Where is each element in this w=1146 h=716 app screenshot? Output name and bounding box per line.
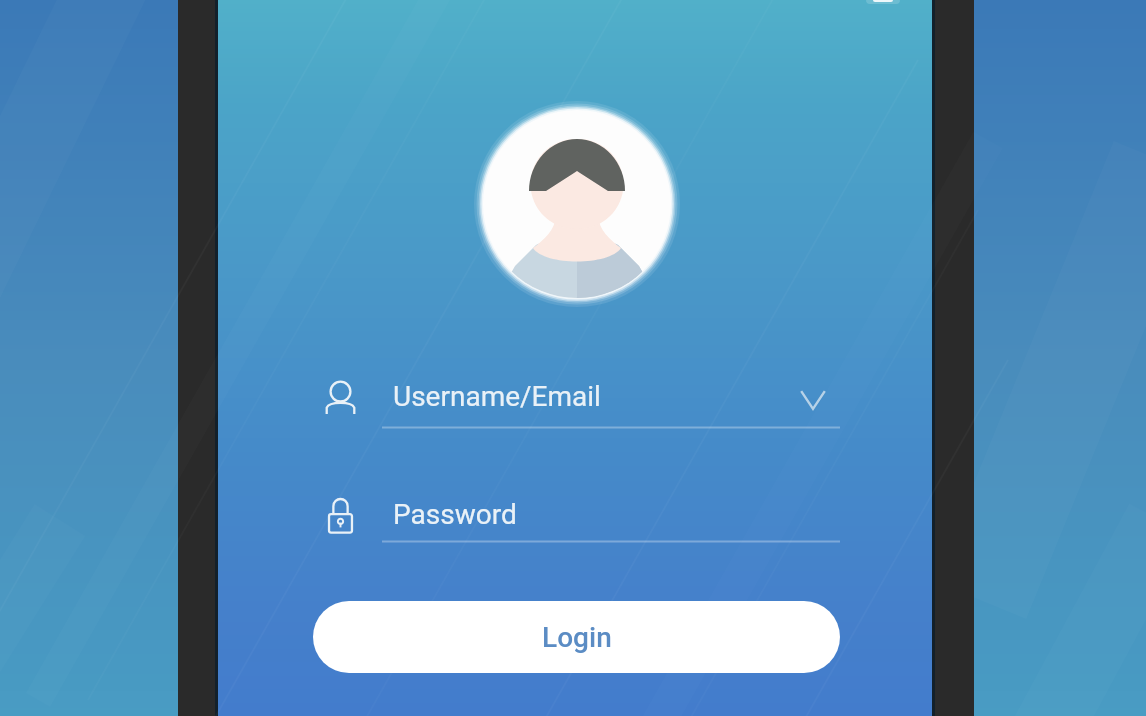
staticText: Login <box>542 621 612 654</box>
button[interactable]: Login <box>313 601 840 673</box>
button[interactable]: Password field <box>318 497 848 557</box>
staticText: Password <box>393 498 517 531</box>
button[interactable]: Username or email field <box>318 379 848 439</box>
button[interactable]: Show saved accounts <box>792 382 834 418</box>
staticText: Username/Email <box>393 380 601 413</box>
